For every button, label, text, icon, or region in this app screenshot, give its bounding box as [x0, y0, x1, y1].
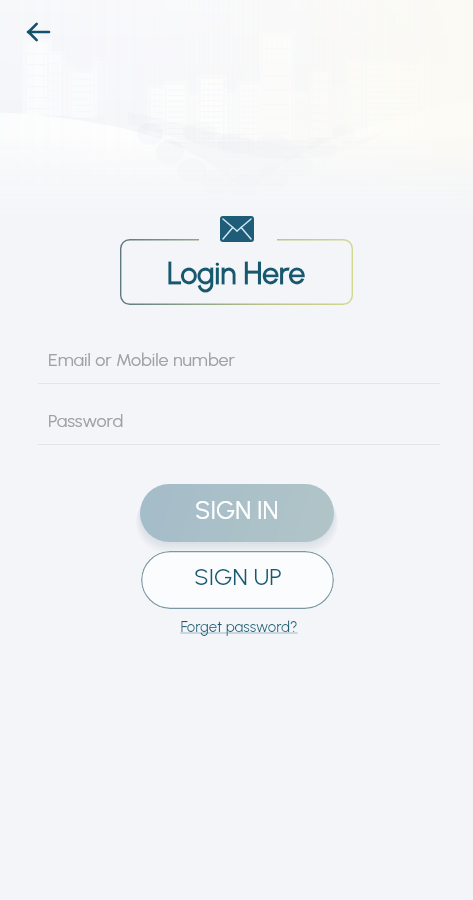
staticText: Password: [48, 410, 124, 432]
staticText: Email or Mobile number: [48, 349, 235, 371]
button[interactable]: Back: [17, 11, 59, 53]
staticText: Forget password?: [180, 618, 298, 636]
staticText: Login Here: [167, 255, 306, 291]
button[interactable]: Forget password?: [168, 615, 310, 639]
button[interactable]: SIGN IN: [140, 484, 334, 542]
staticText: SIGN IN: [195, 495, 279, 525]
button[interactable]: SIGN UP: [141, 551, 334, 609]
staticText: SIGN UP: [194, 562, 282, 591]
